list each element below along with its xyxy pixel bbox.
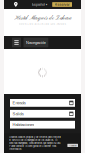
staticText: Español xyxy=(32,2,45,7)
button[interactable]: Entrada xyxy=(10,99,75,107)
button[interactable]: Aceptar xyxy=(67,144,78,147)
staticText: HOSTAL EN ZAHARA DE LOS ATUNES xyxy=(18,22,66,25)
staticText: Habitaciones xyxy=(12,122,34,127)
staticText: ▾ xyxy=(46,3,48,6)
staticText: Reservar xyxy=(55,2,70,6)
button[interactable]: Reservar xyxy=(52,2,72,7)
button[interactable]: Navegación xyxy=(23,38,48,47)
button[interactable]: Location xyxy=(4,0,20,8)
button[interactable]: Español xyxy=(31,2,49,7)
button[interactable]: Hostal Marqués de Zahara xyxy=(14,14,71,25)
staticText: Hostal Marqués de Zahara xyxy=(14,14,71,22)
button[interactable]: Menu xyxy=(12,38,21,47)
staticText: Aceptar xyxy=(69,144,77,147)
staticText: Entrada xyxy=(12,101,25,105)
button[interactable]: Salida xyxy=(10,110,75,118)
staticText: Salida xyxy=(12,112,23,116)
staticText: Navegación xyxy=(26,40,46,45)
button[interactable]: Habitaciones xyxy=(10,121,75,129)
staticText: Usamos cookies propias y de terceros par… xyxy=(9,136,61,150)
